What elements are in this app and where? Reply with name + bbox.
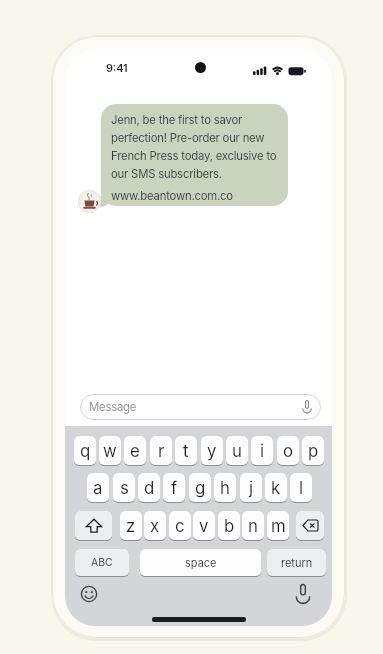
button[interactable]: o xyxy=(277,436,299,465)
button[interactable]: space xyxy=(140,549,261,576)
button[interactable] xyxy=(80,394,321,420)
button[interactable]: g xyxy=(189,473,211,502)
staticText: m xyxy=(271,516,286,536)
staticText: a xyxy=(93,478,103,498)
button[interactable]: return xyxy=(267,549,326,576)
staticText: www.beantown.com.co xyxy=(111,189,233,203)
button[interactable] xyxy=(295,584,311,604)
staticText: h xyxy=(220,478,230,498)
staticText: u xyxy=(232,441,242,461)
staticText: ABC xyxy=(91,556,113,569)
button[interactable] xyxy=(80,585,98,603)
staticText: space xyxy=(185,556,217,569)
staticText: n xyxy=(248,516,258,536)
staticText: d xyxy=(144,478,155,498)
staticText: p xyxy=(308,441,319,461)
button[interactable]: l xyxy=(290,473,312,502)
staticText: 9:41 xyxy=(106,61,128,74)
staticText: x xyxy=(150,516,160,536)
button[interactable]: j xyxy=(240,473,262,502)
button[interactable]: d xyxy=(138,473,160,502)
staticText: Message xyxy=(89,400,137,414)
button[interactable]: r xyxy=(150,436,172,465)
staticText: k xyxy=(271,478,281,498)
button[interactable]: v xyxy=(193,511,215,540)
button[interactable]: ABC xyxy=(75,549,129,576)
button[interactable]: t xyxy=(175,436,197,465)
button[interactable]: m xyxy=(267,511,289,540)
staticText: j xyxy=(249,478,254,498)
button[interactable]: w xyxy=(99,436,121,465)
button[interactable]: h xyxy=(214,473,236,502)
staticText: r xyxy=(158,441,165,461)
staticText: c xyxy=(175,516,185,536)
staticText: v xyxy=(199,516,209,536)
button[interactable]: n xyxy=(242,511,264,540)
button[interactable]: i xyxy=(251,436,273,465)
button[interactable] xyxy=(296,511,324,540)
button[interactable]: z xyxy=(120,511,142,540)
staticText: t xyxy=(183,441,189,461)
staticText: f xyxy=(171,478,178,498)
button[interactable]: c xyxy=(169,511,191,540)
button[interactable]: e xyxy=(124,436,146,465)
staticText: i xyxy=(260,441,265,461)
staticText: e xyxy=(130,441,140,461)
staticText: y xyxy=(207,441,217,461)
staticText: b xyxy=(224,516,235,536)
button[interactable] xyxy=(101,104,288,206)
staticText: g xyxy=(195,478,206,498)
button[interactable] xyxy=(75,511,112,540)
staticText: return xyxy=(281,556,313,569)
button[interactable]: q xyxy=(74,436,96,465)
button[interactable]: f xyxy=(163,473,185,502)
button[interactable]: b xyxy=(218,511,240,540)
button[interactable]: s xyxy=(113,473,135,502)
staticText: q xyxy=(80,441,91,461)
staticText: Jenn, be the first to savor perfection! … xyxy=(111,113,277,181)
button[interactable]: x xyxy=(144,511,166,540)
staticText: l xyxy=(299,478,304,498)
button[interactable]: u xyxy=(226,436,248,465)
button[interactable]: p xyxy=(302,436,324,465)
button[interactable]: a xyxy=(87,473,109,502)
staticText: w xyxy=(103,441,117,461)
staticText: z xyxy=(126,516,136,536)
staticText: o xyxy=(283,441,294,461)
staticText: s xyxy=(120,478,129,498)
button[interactable]: k xyxy=(265,473,287,502)
button[interactable]: y xyxy=(201,436,223,465)
